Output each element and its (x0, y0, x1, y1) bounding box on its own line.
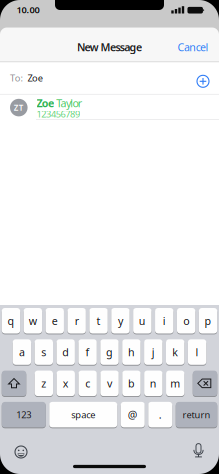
button[interactable]: v (100, 371, 119, 396)
staticText: ZT (14, 102, 24, 113)
button[interactable]: e (45, 308, 64, 333)
staticText: c (85, 376, 90, 390)
button[interactable]: m (166, 371, 184, 396)
button[interactable]: y (111, 308, 130, 333)
staticText: Zoe (36, 96, 54, 110)
staticText: n (150, 376, 157, 390)
button[interactable]: . (148, 402, 172, 427)
staticText: r (75, 314, 79, 328)
button[interactable]: q (2, 308, 20, 333)
button[interactable]: l (188, 339, 206, 365)
button[interactable]: u (133, 308, 151, 333)
staticText: w (29, 314, 37, 328)
staticText: b (128, 376, 135, 390)
button[interactable]: x (56, 371, 75, 396)
staticText: f (86, 345, 90, 359)
staticText: m (170, 376, 180, 390)
button[interactable]: To (0, 62, 219, 94)
button[interactable]: Shift (2, 371, 26, 396)
button[interactable]: Cancel (174, 39, 212, 55)
button[interactable]: a (13, 339, 31, 365)
button[interactable]: b (122, 371, 141, 396)
staticText: s (41, 345, 46, 359)
button[interactable]: d (56, 339, 75, 365)
staticText: 123 (16, 408, 31, 421)
staticText: e (52, 314, 58, 328)
staticText: x (63, 376, 69, 390)
button[interactable]: h (122, 339, 141, 365)
staticText: Cancel (177, 40, 208, 54)
staticText: p (205, 314, 212, 328)
staticText: 10.00 (16, 3, 39, 16)
button[interactable]: Add Contact (196, 74, 210, 88)
staticText: k (172, 345, 178, 359)
button[interactable]: p (199, 308, 217, 333)
staticText: return (182, 408, 210, 421)
staticText: a (19, 345, 25, 359)
button[interactable]: o (177, 308, 195, 333)
button[interactable]: j (144, 339, 162, 365)
button[interactable]: k (166, 339, 184, 365)
staticText: z (41, 376, 46, 390)
staticText: To: (10, 72, 23, 84)
button[interactable]: Dictate (190, 442, 206, 460)
staticText: u (139, 314, 146, 328)
button[interactable]: t (89, 308, 108, 333)
staticText: l (196, 345, 199, 359)
staticText: v (107, 376, 112, 390)
staticText: h (128, 345, 135, 359)
button[interactable]: ZT (0, 94, 219, 119)
button[interactable]: g (100, 339, 119, 365)
button[interactable]: return (176, 402, 217, 427)
staticText: @ (128, 408, 138, 422)
staticText: New Message (77, 40, 142, 54)
staticText: q (7, 314, 14, 328)
staticText: Taylor (56, 96, 82, 110)
staticText: space (71, 408, 95, 421)
button[interactable]: space (49, 402, 117, 427)
button[interactable]: f (78, 339, 97, 365)
button[interactable]: c (78, 371, 97, 396)
staticText: o (183, 314, 189, 328)
staticText: y (118, 314, 123, 328)
staticText: i (163, 314, 166, 328)
button[interactable]: r (67, 308, 86, 333)
staticText: . (159, 408, 162, 422)
staticText: g (106, 345, 113, 359)
button[interactable]: Delete (193, 371, 217, 396)
button[interactable]: z (35, 371, 53, 396)
button[interactable]: 123 (2, 402, 46, 427)
button[interactable]: i (155, 308, 173, 333)
staticText: t (96, 314, 100, 328)
button[interactable]: n (144, 371, 162, 396)
staticText: d (62, 345, 69, 359)
button[interactable]: @ (121, 402, 145, 427)
button[interactable]: Emoji (13, 444, 29, 460)
staticText: 123456789 (36, 108, 80, 120)
button[interactable]: w (24, 308, 42, 333)
staticText: j (152, 345, 155, 359)
staticText: Zoe (27, 72, 43, 84)
button[interactable]: s (35, 339, 53, 365)
